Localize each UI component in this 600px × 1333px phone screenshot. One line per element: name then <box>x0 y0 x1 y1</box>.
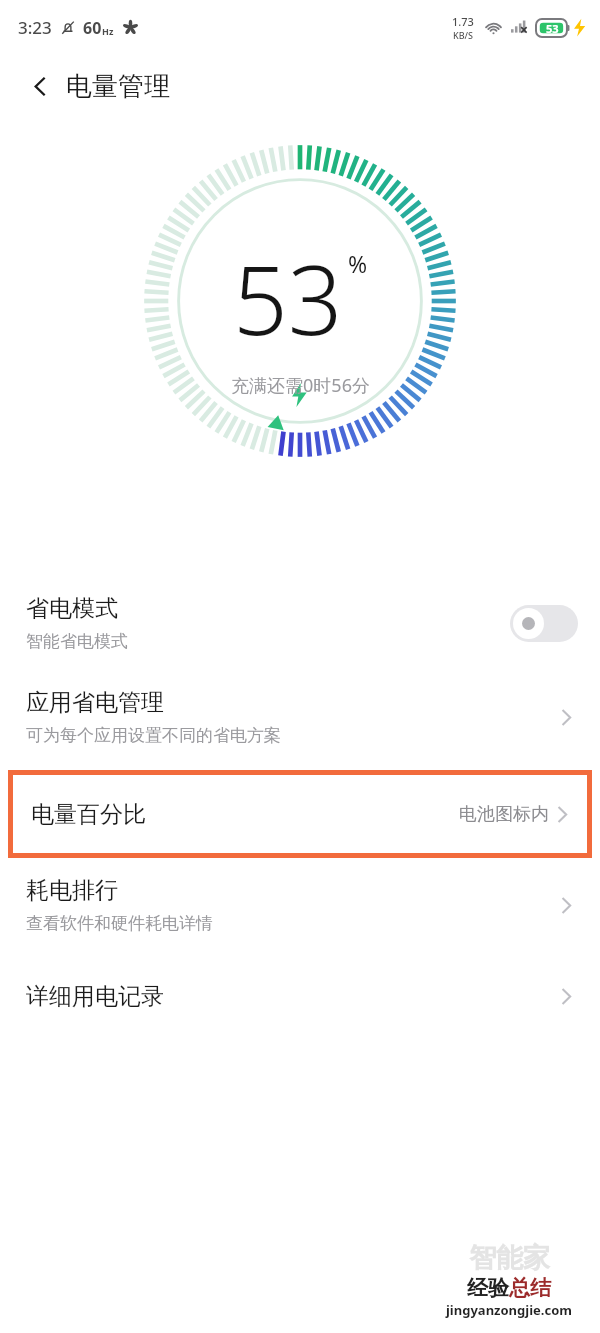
staticText: 53 <box>233 232 343 363</box>
staticText: 应用省电管理 <box>26 688 164 717</box>
button[interactable]: 耗电排行 <box>0 858 600 952</box>
staticText: 充满还需0时56分 <box>231 373 370 398</box>
button[interactable]: 应用省电管理 <box>0 670 600 764</box>
staticText: KB/S <box>453 29 473 41</box>
staticText: 耗电排行 <box>26 876 118 905</box>
staticText: 电量百分比 <box>31 800 459 829</box>
staticText: 省电模式 <box>26 594 118 623</box>
button[interactable]: Back <box>20 66 60 106</box>
staticText: 电量管理 <box>66 70 170 103</box>
staticText: 3:23 <box>18 16 52 39</box>
staticText: 查看软件和硬件耗电详情 <box>26 913 213 934</box>
staticText: 可为每个应用设置不同的省电方案 <box>26 725 281 746</box>
staticText: 经验 <box>467 1275 509 1301</box>
staticText: 53 <box>546 21 559 36</box>
staticText: 总结 <box>509 1275 551 1301</box>
staticText: jingyanzongjie.com <box>446 1301 572 1319</box>
staticText: 60 <box>83 17 102 39</box>
staticText: Hz <box>102 25 114 37</box>
button[interactable]: 省电模式 <box>0 576 600 670</box>
button[interactable]: 电量百分比 <box>13 775 587 853</box>
staticText: 智能家 <box>469 1241 550 1275</box>
button[interactable]: 省电模式 开关 <box>510 605 578 642</box>
staticText: 电池图标内 <box>459 803 549 826</box>
staticText: 详细用电记录 <box>26 982 555 1011</box>
button[interactable]: 详细用电记录 <box>0 952 600 1040</box>
staticText: % <box>348 248 368 279</box>
staticText: 1.73 <box>452 14 474 29</box>
staticText: 智能省电模式 <box>26 631 128 652</box>
